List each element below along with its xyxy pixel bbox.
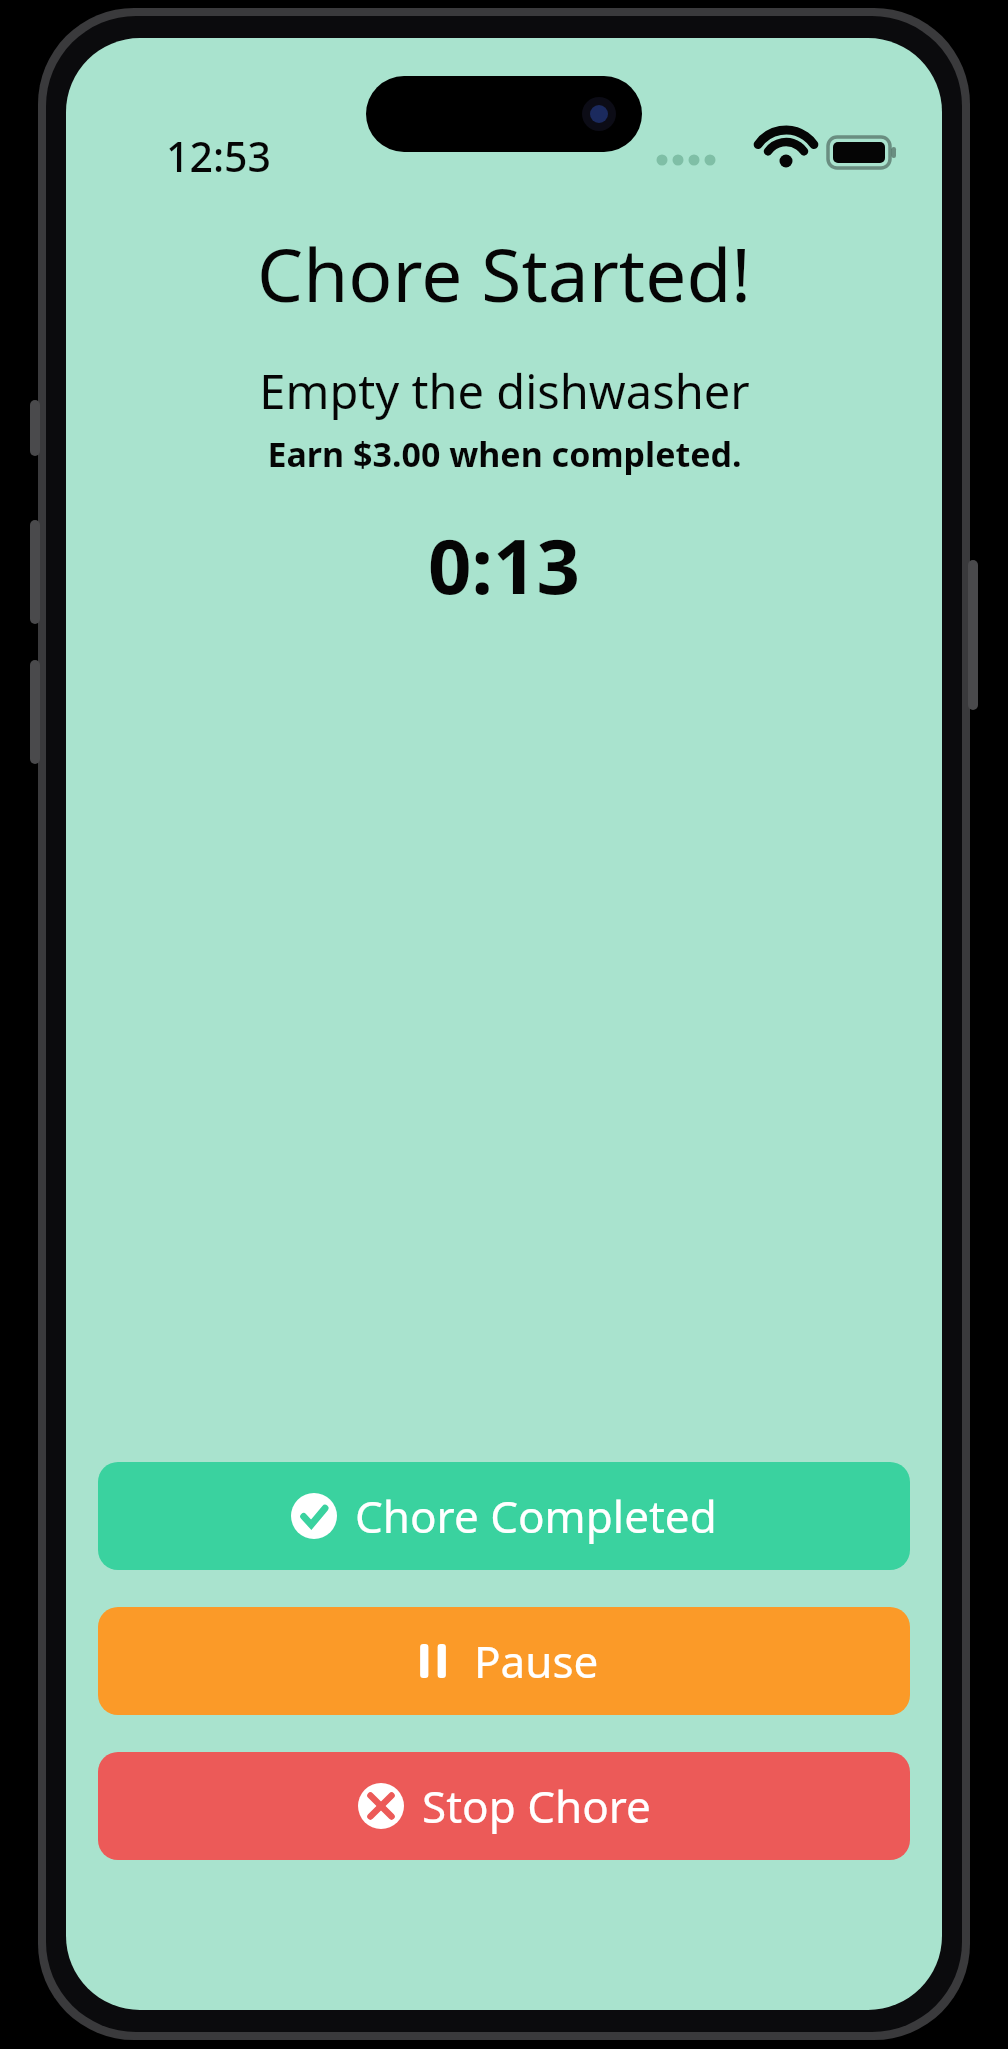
staticText: Earn $3.00 when completed.	[267, 431, 742, 477]
button[interactable]: Stop Chore	[98, 1752, 910, 1860]
button[interactable]: Chore Completed	[98, 1462, 910, 1570]
button[interactable]: Pause	[98, 1607, 910, 1715]
staticText: Stop Chore	[422, 1776, 651, 1836]
staticText: Chore Completed	[355, 1486, 717, 1546]
staticText: 12:53	[166, 128, 271, 184]
staticText: 0:13	[428, 513, 580, 617]
staticText: Chore Started!	[257, 224, 751, 323]
staticText: Empty the dishwasher	[259, 359, 750, 423]
staticText: Pause	[474, 1631, 599, 1691]
